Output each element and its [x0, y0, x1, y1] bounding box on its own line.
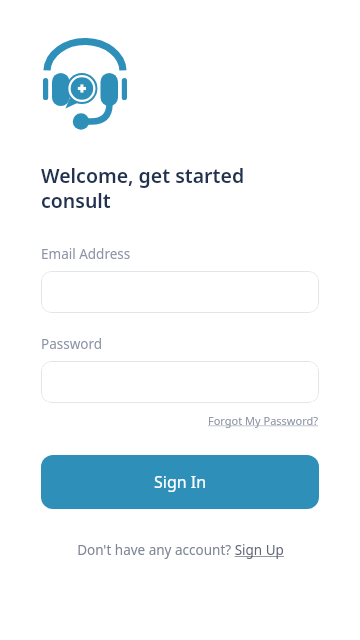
button[interactable]: Forgot My Password?	[208, 411, 319, 430]
staticText: Forgot My Password?	[208, 413, 319, 428]
button[interactable]: Email Address input	[41, 271, 319, 313]
button[interactable]: Sign In	[41, 455, 319, 509]
button[interactable]: Password input	[41, 361, 319, 403]
staticText: Welcome, get started consult	[41, 162, 245, 214]
button[interactable]: Don't have any account? Sign Up	[73, 537, 288, 563]
staticText: Sign In	[154, 471, 207, 493]
staticText: Password	[41, 335, 103, 353]
staticText: Don't have any account? Sign Up	[77, 541, 284, 559]
staticText: Email Address	[41, 245, 131, 263]
